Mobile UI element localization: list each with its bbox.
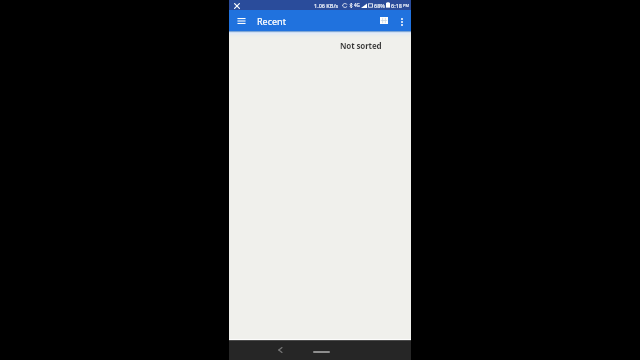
staticText: PM [403,3,410,8]
button[interactable]: More options [393,10,411,31]
button[interactable]: Home [307,345,335,359]
staticText: 1.06 KB/s [314,2,339,9]
staticText: 6:18 [391,2,402,9]
staticText: 4G [354,2,360,8]
button[interactable]: Not sorted [330,36,410,55]
button[interactable]: Open navigation drawer [229,10,251,31]
staticText: Not sorted [340,40,382,51]
button[interactable]: Close [229,0,243,10]
button[interactable]: Back [272,342,288,358]
button[interactable]: Change view layout [373,10,395,31]
staticText: 68% [374,2,385,9]
staticText: Recent [257,15,286,27]
